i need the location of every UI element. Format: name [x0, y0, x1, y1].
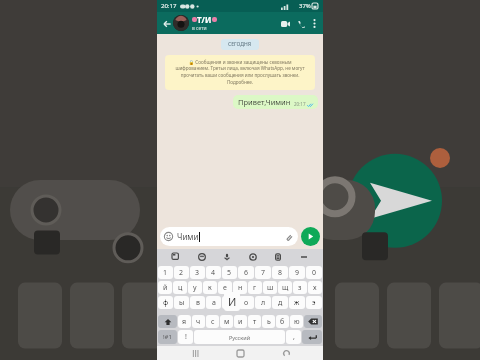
staticText: э	[312, 298, 316, 308]
button[interactable]: в	[190, 296, 205, 309]
staticText: с	[211, 317, 215, 327]
button[interactable]: 2	[174, 266, 189, 279]
staticText: ,	[293, 332, 295, 342]
button[interactable]: 🔒 Сообщения и звонки защищены сквозным ш…	[172, 59, 308, 86]
button[interactable]: GIF	[195, 250, 209, 264]
button[interactable]: 0	[306, 266, 322, 279]
staticText: в сети	[192, 25, 207, 32]
button[interactable]: 7	[255, 266, 271, 279]
staticText: СЕГОДНЯ	[228, 41, 252, 48]
staticText: 20:17	[294, 101, 306, 107]
button[interactable]: Чими	[164, 227, 294, 246]
button[interactable]: ю	[290, 315, 303, 328]
button[interactable]: б	[276, 315, 289, 328]
button[interactable]: Home	[232, 346, 248, 360]
button[interactable]: у	[188, 281, 202, 294]
staticText: и	[238, 317, 243, 327]
button[interactable]: щ	[278, 281, 292, 294]
button[interactable]: Enter	[302, 330, 322, 344]
staticText: 37%	[299, 2, 311, 10]
staticText: п	[227, 298, 232, 308]
button[interactable]: д	[272, 296, 288, 309]
button[interactable]: !	[178, 330, 193, 344]
staticText: з	[298, 283, 302, 293]
button[interactable]: 5	[222, 266, 237, 279]
staticText: 6	[244, 268, 249, 278]
staticText: 0	[312, 268, 317, 278]
button[interactable]: Stickers	[169, 250, 183, 264]
button[interactable]: е	[218, 281, 232, 294]
staticText: 3	[195, 268, 200, 278]
button[interactable]: Clipboard	[271, 250, 285, 264]
button[interactable]: с	[206, 315, 219, 328]
button[interactable]: T/И	[192, 14, 278, 32]
staticText: 2	[179, 268, 184, 278]
staticText: а	[212, 298, 216, 308]
staticText: И	[228, 294, 237, 309]
button[interactable]: 9	[289, 266, 305, 279]
staticText: щ	[282, 283, 289, 293]
staticText: 8	[278, 268, 283, 278]
button[interactable]: 3	[190, 266, 205, 279]
button[interactable]: Привет,Чимин	[238, 97, 313, 107]
staticText: у	[193, 283, 197, 293]
button[interactable]: Back	[160, 17, 173, 30]
staticText: к	[208, 283, 212, 293]
button[interactable]: ы	[174, 296, 189, 309]
staticText: х	[313, 283, 317, 293]
button[interactable]: ч	[192, 315, 205, 328]
button[interactable]: з	[293, 281, 307, 294]
button[interactable]: н	[233, 281, 247, 294]
button[interactable]: 8	[272, 266, 288, 279]
button[interactable]: Settings	[246, 250, 260, 264]
staticText: й	[163, 283, 168, 293]
staticText: н	[238, 283, 243, 293]
button[interactable]: ш	[263, 281, 277, 294]
button[interactable]: !#1	[158, 330, 177, 344]
button[interactable]: More	[297, 250, 311, 264]
button[interactable]: й	[158, 281, 172, 294]
button[interactable]: 4	[206, 266, 221, 279]
staticText: 1	[163, 268, 168, 278]
button[interactable]: Profile photo	[173, 15, 189, 31]
button[interactable]: к	[203, 281, 217, 294]
button[interactable]: ,	[286, 330, 301, 344]
button[interactable]: о	[238, 296, 254, 309]
button[interactable]: ц	[173, 281, 187, 294]
button[interactable]: ь	[262, 315, 275, 328]
button[interactable]: Backspace	[304, 315, 322, 328]
button[interactable]: п	[222, 296, 237, 309]
button[interactable]: Send	[301, 227, 320, 246]
button[interactable]: я	[178, 315, 191, 328]
button[interactable]: Video call	[278, 16, 293, 31]
button[interactable]: Back	[278, 346, 294, 360]
button[interactable]: л	[255, 296, 271, 309]
staticText: !	[185, 332, 187, 342]
button[interactable]: ж	[289, 296, 305, 309]
staticText: T/И	[197, 14, 212, 25]
button[interactable]: Voice input	[220, 250, 234, 264]
button[interactable]: и	[234, 315, 247, 328]
button[interactable]: 1	[158, 266, 173, 279]
other: Backspace	[308, 318, 318, 325]
button[interactable]: м	[220, 315, 233, 328]
button[interactable]: Shift	[158, 315, 177, 328]
staticText: д	[278, 298, 283, 308]
button[interactable]: х	[308, 281, 322, 294]
button[interactable]: Recents	[187, 346, 203, 360]
button[interactable]: а	[206, 296, 221, 309]
button[interactable]: 6	[238, 266, 254, 279]
staticText: 4	[211, 268, 216, 278]
staticText: Чими	[177, 231, 199, 242]
button[interactable]: ф	[158, 296, 173, 309]
button[interactable]: Voice call	[293, 16, 308, 31]
staticText: г	[253, 283, 257, 293]
button[interactable]: г	[248, 281, 262, 294]
button[interactable]: Русский	[194, 330, 285, 344]
button[interactable]: э	[306, 296, 322, 309]
staticText: ю	[294, 317, 300, 327]
button[interactable]: More options	[308, 17, 320, 29]
button[interactable]: Attach	[284, 232, 294, 242]
staticText: в	[196, 298, 200, 308]
button[interactable]: т	[248, 315, 261, 328]
